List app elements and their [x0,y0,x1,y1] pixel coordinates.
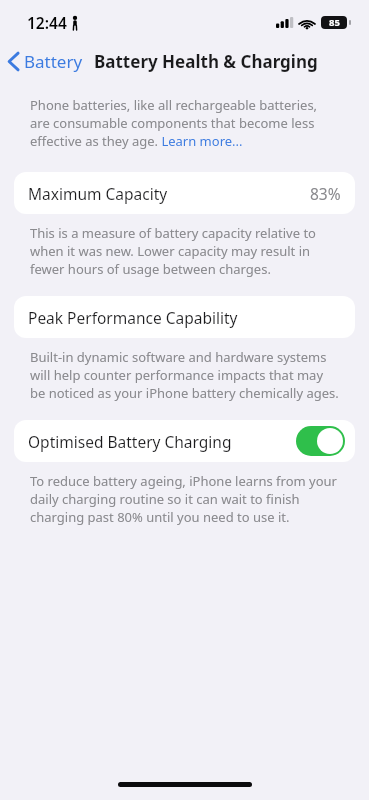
staticText: 83% [310,183,341,204]
staticText: 85 [329,16,340,29]
button[interactable]: Peak Performance Capability [14,296,355,338]
button[interactable]: Optimised Battery Charging on [296,426,345,456]
staticText: Built-in dynamic software and hardware s… [30,348,339,402]
staticText: 12:44 [27,12,67,33]
button[interactable]: Maximum Capacity [14,172,355,214]
button[interactable]: Optimised Battery Charging [14,420,355,462]
button[interactable]: Back to Battery [0,46,89,77]
staticText: Optimised Battery Charging [28,431,232,452]
staticText: Phone batteries, like all rechargeable b… [30,96,339,150]
staticText: This is a measure of battery capacity re… [30,224,339,278]
staticText: Battery [24,50,83,73]
staticText: Battery Health & Charging [94,50,318,73]
staticText: Peak Performance Capability [28,307,238,328]
staticText: To reduce battery ageing, iPhone learns … [30,472,339,526]
staticText: Maximum Capacity [28,183,168,204]
